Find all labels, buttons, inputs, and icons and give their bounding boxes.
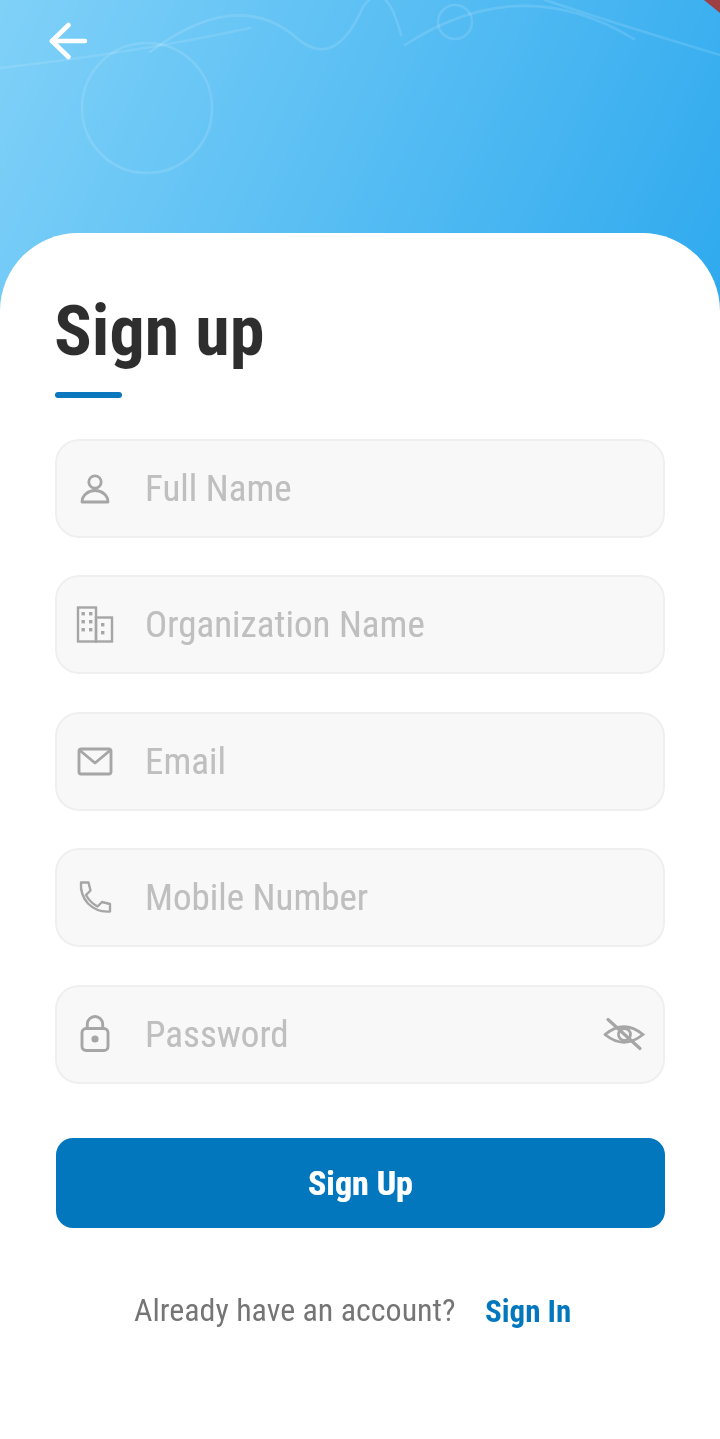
staticText: Sign Up bbox=[308, 1163, 413, 1203]
button[interactable]: Full Name bbox=[55, 439, 665, 538]
staticText: Email bbox=[145, 740, 226, 783]
staticText: Mobile Number bbox=[145, 876, 369, 919]
button[interactable]: Mobile Number bbox=[55, 848, 665, 947]
staticText: Organization Name bbox=[145, 603, 425, 646]
button[interactable] bbox=[44, 17, 92, 65]
button[interactable]: Sign Up bbox=[56, 1138, 665, 1228]
staticText: Full Name bbox=[145, 467, 292, 510]
staticText: Password bbox=[145, 1013, 289, 1056]
button[interactable]: Sign In bbox=[485, 1293, 572, 1329]
staticText: Already have an account? bbox=[134, 1291, 456, 1329]
button[interactable]: Password bbox=[55, 985, 665, 1084]
staticText: Sign up bbox=[54, 290, 265, 372]
button[interactable]: Organization Name bbox=[55, 575, 665, 674]
button[interactable]: Email bbox=[55, 712, 665, 811]
